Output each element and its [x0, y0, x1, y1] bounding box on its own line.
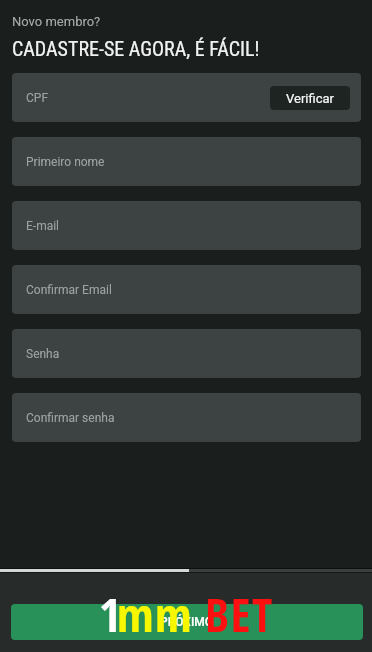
- button[interactable]: E-mail: [12, 201, 361, 250]
- staticText: Novo membro?: [12, 14, 101, 29]
- staticText: Primeiro nome: [26, 155, 105, 169]
- button[interactable]: Verificar: [270, 86, 350, 110]
- staticText: Confirmar Email: [26, 283, 112, 297]
- staticText: CPF: [26, 91, 49, 105]
- staticText: .: [194, 582, 209, 646]
- button[interactable]: CPF: [12, 73, 361, 122]
- staticText: mm: [117, 582, 194, 646]
- staticText: Senha: [26, 347, 60, 361]
- staticText: PRÓXIMO: [160, 615, 214, 629]
- staticText: 1: [99, 582, 123, 646]
- button[interactable]: PRÓXIMO: [11, 604, 363, 640]
- button[interactable]: Confirmar senha: [12, 393, 361, 442]
- button[interactable]: Confirmar Email: [12, 265, 361, 314]
- staticText: BET: [205, 582, 274, 646]
- button[interactable]: Senha: [12, 329, 361, 378]
- staticText: Verificar: [286, 91, 334, 106]
- staticText: E-mail: [26, 219, 60, 233]
- staticText: CADASTRE-SE AGORA, É FÁCIL!: [12, 37, 260, 60]
- button[interactable]: Primeiro nome: [12, 137, 361, 186]
- staticText: Confirmar senha: [26, 411, 115, 425]
